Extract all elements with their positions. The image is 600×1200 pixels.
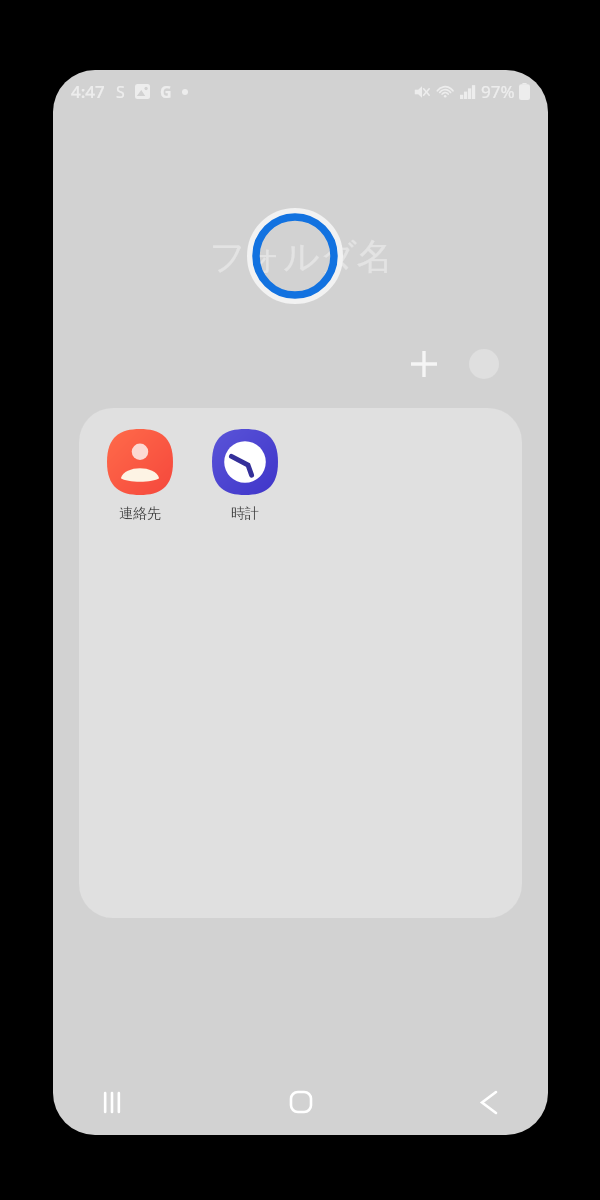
button[interactable]: Folder color [462, 342, 506, 386]
staticText: 連絡先 [119, 505, 161, 523]
staticText: 97% [481, 80, 515, 103]
button[interactable]: Back [460, 1073, 518, 1131]
button[interactable]: 連絡先 [87, 422, 192, 529]
staticText: 4:47 [71, 80, 105, 103]
button[interactable]: Add app [402, 342, 446, 386]
button[interactable]: Home [272, 1073, 330, 1131]
button[interactable]: フォルダ名 [197, 228, 405, 285]
button[interactable]: Recents [83, 1073, 141, 1131]
button[interactable]: 時計 [192, 422, 297, 529]
other: Touch indicator [251, 212, 339, 300]
staticText: 時計 [231, 505, 259, 523]
staticText: S [116, 81, 125, 103]
staticText: G [160, 81, 172, 103]
